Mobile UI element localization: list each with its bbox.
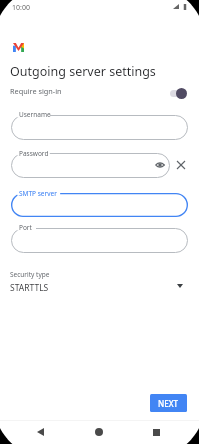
button[interactable]: Require sign-in — [0, 81, 199, 101]
staticText: Require sign-in — [10, 86, 62, 96]
staticText: Security type — [10, 270, 50, 279]
button[interactable] — [11, 115, 188, 140]
button[interactable] — [11, 153, 170, 178]
staticText: SMTP server — [19, 189, 57, 198]
button[interactable]: Back — [28, 420, 52, 444]
button[interactable]: Home — [87, 420, 111, 444]
button[interactable]: Security type — [0, 266, 199, 298]
button[interactable] — [11, 193, 188, 217]
button[interactable]: Recents — [144, 420, 168, 444]
staticText: STARTTLS — [10, 282, 49, 294]
staticText: 10:00 — [12, 3, 30, 13]
button[interactable] — [11, 228, 188, 253]
staticText: Username — [19, 110, 51, 119]
button[interactable]: NEXT — [150, 394, 187, 412]
staticText: Password — [19, 149, 49, 158]
staticText: Outgoing server settings — [10, 63, 156, 80]
button[interactable]: Clear — [173, 157, 189, 173]
staticText: Port — [19, 223, 32, 232]
button[interactable]: Show password — [152, 157, 168, 173]
staticText: NEXT — [158, 398, 179, 409]
